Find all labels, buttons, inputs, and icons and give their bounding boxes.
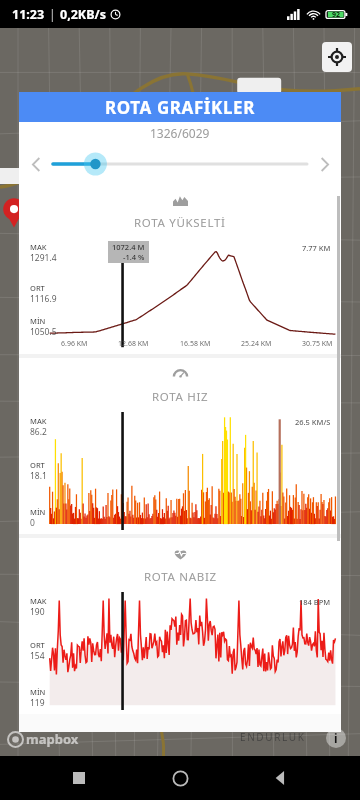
button[interactable]: ROTA HIZ [19,358,341,534]
button[interactable]: Back [259,756,303,800]
staticText: ORT [30,460,45,470]
staticText: ROTA NABIZ [144,569,217,585]
button[interactable]: ROTA YÜKSELTİ [19,184,341,354]
staticText: 26.5 KM/S [295,417,331,427]
button[interactable]: Mapbox [8,730,79,748]
staticText: i [334,730,338,746]
staticText: 0 [30,517,35,529]
staticText: 16.58 KM [180,339,211,349]
staticText: 30.75 KM [302,339,333,349]
staticText: MAK [30,416,47,426]
staticText: mapbox [26,730,79,748]
staticText: 6.96 KM [61,339,88,349]
staticText: ORT [30,283,45,293]
staticText: 119 [30,697,45,709]
button[interactable]: ROTA NABIZ [19,538,341,714]
staticText: 86.2 [30,426,47,438]
staticText: ROTA GRAFİKLER [105,96,255,119]
staticText: MİN [30,316,46,326]
staticText: 154 [30,650,45,662]
staticText: 18.1 [30,470,47,482]
staticText: 1326/6029 [150,125,210,141]
staticText: 1072.4 M [112,242,145,252]
staticText: MİN [30,687,46,697]
button[interactable]: Recent apps [57,756,101,800]
staticText: -1.4 % [123,252,145,262]
staticText: 1050.5 [30,326,57,338]
staticText: ROTA HIZ [152,389,209,405]
staticText: ORT [30,640,45,650]
staticText: | [49,6,56,22]
staticText: 190 [30,606,45,618]
staticText: 92 [332,10,341,20]
staticText: MAK [30,596,47,606]
button[interactable]: Previous [19,147,53,181]
staticText: 1291.4 [30,252,57,264]
staticText: MAK [30,242,47,252]
button[interactable]: Map information [326,728,346,748]
staticText: 25.24 KM [241,339,272,349]
staticText: 1116.9 [30,293,57,305]
staticText: MİN [30,507,46,517]
button[interactable]: My location [322,42,352,72]
staticText: ROTA YÜKSELTİ [134,215,226,231]
staticText: 0,2KB/s [60,6,106,23]
staticText: 11:23 [12,6,45,23]
staticText: ENDÜRLÜK [240,730,306,744]
staticText: 7.77 KM [302,243,331,253]
staticText: 184 BPM [299,597,331,607]
button[interactable]: Home [158,756,202,800]
button[interactable]: Route position slider [53,147,307,181]
button[interactable]: Next [307,147,341,181]
staticText: 12.68 KM [118,339,149,349]
button[interactable]: ROTA GRAFİKLER [19,92,341,122]
